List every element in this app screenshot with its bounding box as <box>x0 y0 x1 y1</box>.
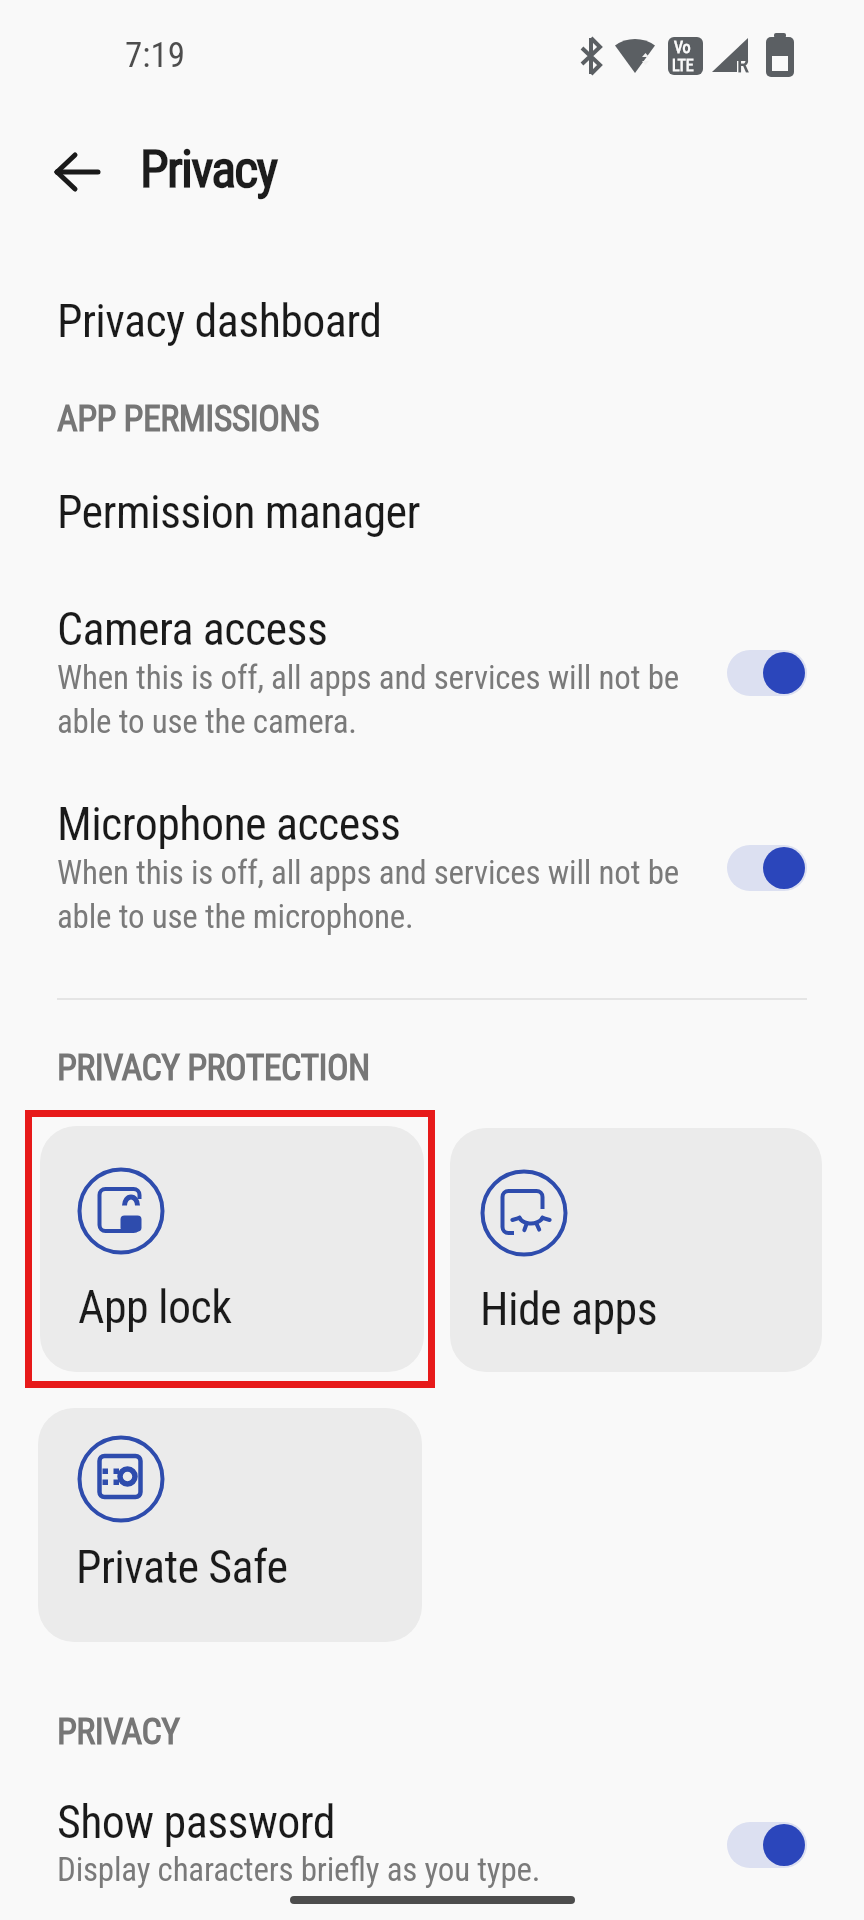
staticText: Private Safe <box>76 1540 288 1594</box>
staticText: PRIVACY PROTECTION <box>57 1047 370 1089</box>
staticText: App lock <box>78 1280 232 1334</box>
staticText: APP PERMISSIONS <box>57 398 320 440</box>
staticText: PRIVACY <box>57 1711 180 1753</box>
staticText: 7:19 <box>125 35 186 76</box>
button[interactable] <box>0 1790 864 1910</box>
staticText: R <box>737 52 749 78</box>
staticText: Microphone access <box>57 797 401 851</box>
button[interactable] <box>0 790 864 940</box>
button[interactable] <box>727 650 807 696</box>
staticText: Vo <box>674 38 691 57</box>
button[interactable]: Private Safe <box>38 1408 422 1642</box>
button[interactable]: Hide apps <box>450 1128 822 1372</box>
button[interactable] <box>55 150 101 194</box>
button[interactable] <box>0 280 864 370</box>
staticText: When this is off, all apps and services … <box>57 658 680 741</box>
staticText: Permission manager <box>57 485 420 539</box>
staticText: LTE <box>672 56 694 75</box>
staticText: Privacy dashboard <box>57 294 382 348</box>
staticText: When this is off, all apps and services … <box>57 853 680 936</box>
button[interactable]: App lock <box>40 1126 424 1372</box>
button[interactable] <box>727 1822 807 1868</box>
staticText: Display characters briefly as you type. <box>57 1850 541 1889</box>
staticText: Camera access <box>57 602 328 656</box>
staticText: Hide apps <box>480 1282 658 1336</box>
button[interactable] <box>0 470 864 560</box>
button[interactable] <box>0 595 864 745</box>
staticText: Show password <box>57 1795 335 1849</box>
staticText: Privacy <box>140 139 277 200</box>
button[interactable] <box>727 845 807 891</box>
